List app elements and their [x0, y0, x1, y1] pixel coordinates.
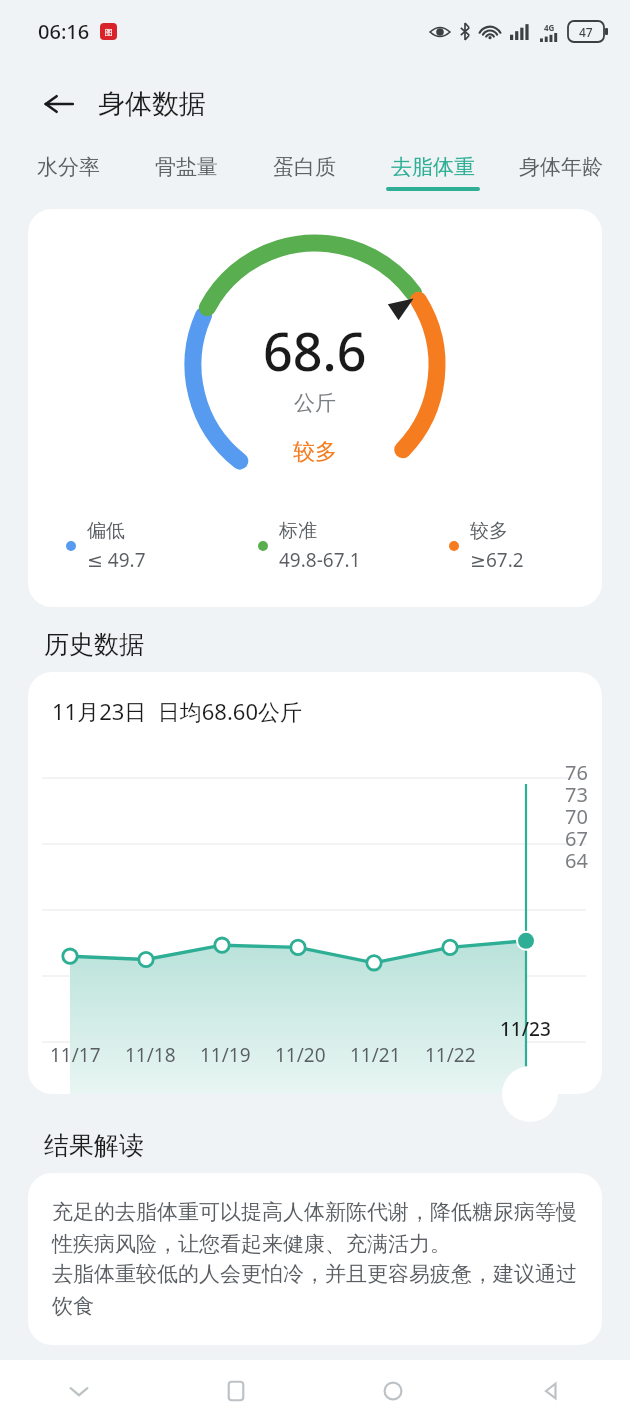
staticText: 骨盐量 — [155, 154, 218, 180]
button[interactable]: 骨盐量 — [127, 146, 245, 195]
staticText: 历史数据 — [44, 629, 144, 660]
staticText: 较多 — [470, 519, 508, 543]
staticText: ≥67.2 — [470, 547, 524, 573]
staticText: 偏低 — [87, 519, 125, 543]
staticText: 身体数据 — [98, 87, 206, 121]
button[interactable]: 偏低 — [28, 519, 220, 573]
staticText: 充足的去脂体重可以提高人体新陈代谢，降低糖尿病等慢性疾病风险，让您看起来健康、充… — [52, 1199, 578, 1257]
button[interactable]: 身体年龄 — [502, 146, 620, 195]
staticText: 结果解读 — [44, 1130, 144, 1161]
staticText: 11/23 — [500, 1016, 551, 1042]
button[interactable]: Back — [34, 79, 84, 129]
button[interactable]: Recents — [157, 1360, 314, 1422]
staticText: 去脂体重 — [391, 154, 475, 180]
button[interactable]: Hide keyboard — [0, 1360, 157, 1422]
staticText: 47 — [579, 24, 593, 40]
staticText: 68.6 — [263, 315, 367, 386]
staticText: 11/20 — [275, 1042, 326, 1068]
button[interactable]: 标准 — [220, 519, 411, 573]
staticText: 70 — [565, 803, 588, 830]
staticText: 11/21 — [350, 1042, 401, 1068]
staticText: 11/18 — [125, 1042, 176, 1068]
button[interactable]: 水分率 — [10, 146, 127, 195]
staticText: 11/22 — [425, 1042, 476, 1068]
staticText: 49.8-67.1 — [279, 547, 361, 573]
staticText: 身体年龄 — [519, 154, 603, 180]
staticText: 去脂体重较低的人会更怕冷，并且更容易疲惫，建议通过饮食 — [52, 1261, 578, 1319]
staticText: 较多 — [293, 438, 337, 466]
staticText: 公斤 — [294, 390, 336, 416]
button[interactable]: Home — [314, 1360, 472, 1422]
staticText: 64 — [565, 847, 588, 874]
staticText: 73 — [565, 781, 588, 808]
staticText: 11/17 — [50, 1042, 101, 1068]
staticText: 11月23日 日均68.60公斤 — [52, 696, 303, 726]
button[interactable]: 去脂体重 — [363, 146, 502, 199]
staticText: 水分率 — [37, 154, 100, 180]
button[interactable]: 68.6 — [28, 209, 602, 607]
staticText: 76 — [565, 759, 588, 786]
staticText: 06:16 — [38, 18, 90, 45]
staticText: 图 — [105, 27, 113, 37]
staticText: ≤ 49.7 — [87, 547, 146, 573]
button[interactable]: Back — [472, 1360, 630, 1422]
button[interactable]: 11月23日 日均68.60公斤 — [28, 672, 602, 1094]
staticText: 11/19 — [200, 1042, 251, 1068]
staticText: 标准 — [279, 519, 317, 543]
button[interactable]: 较多 — [411, 519, 602, 573]
button[interactable]: More — [502, 1066, 558, 1122]
staticText: 4G — [544, 22, 555, 33]
staticText: 蛋白质 — [273, 154, 336, 180]
button[interactable]: 蛋白质 — [245, 146, 363, 195]
button[interactable]: 充足的去脂体重可以提高人体新陈代谢，降低糖尿病等慢性疾病风险，让您看起来健康、充… — [28, 1173, 602, 1345]
staticText: 67 — [565, 825, 588, 852]
